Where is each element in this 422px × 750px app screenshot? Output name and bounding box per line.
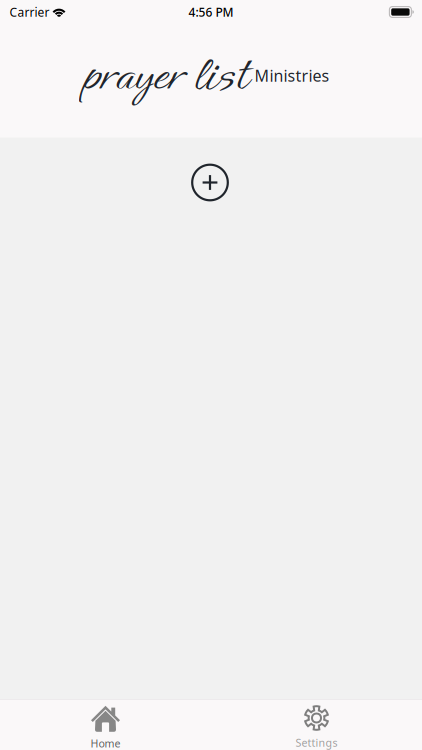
staticText: 4:56 PM	[188, 4, 233, 20]
staticText: Ministries	[254, 65, 329, 86]
staticText: Home	[90, 736, 120, 750]
button[interactable]: Settings	[211, 700, 422, 750]
staticText: Carrier	[9, 4, 49, 20]
staticText: Settings	[295, 736, 337, 750]
button[interactable]: Home	[0, 700, 211, 750]
staticText: prayer list	[81, 38, 247, 111]
button[interactable]: Add prayer request	[189, 160, 233, 204]
